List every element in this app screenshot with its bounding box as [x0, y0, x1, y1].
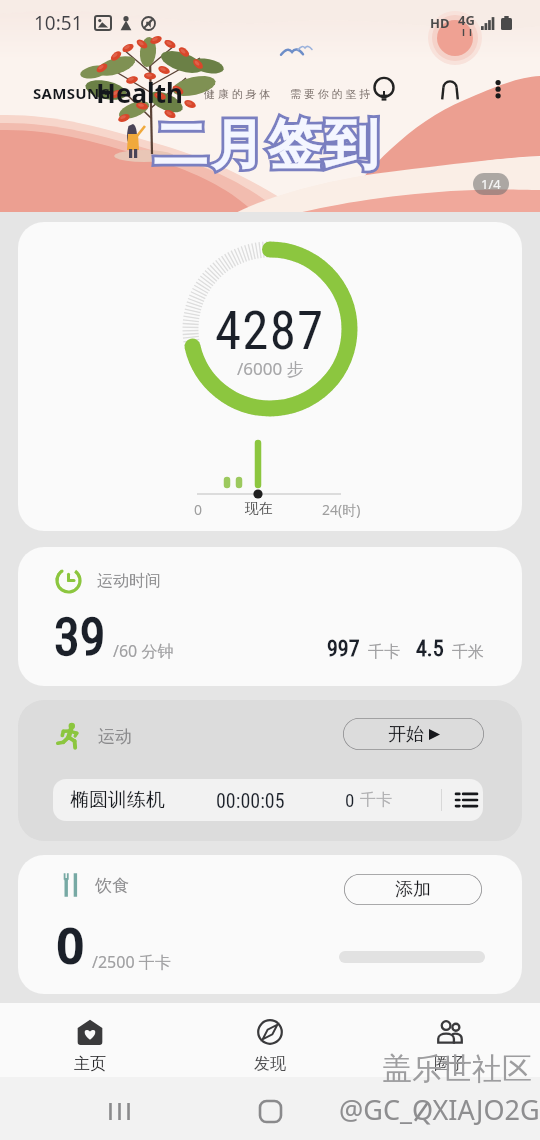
button[interactable]: 饮食 [18, 855, 522, 994]
button[interactable]: 4287 [18, 222, 522, 531]
button[interactable]: 开始 [343, 718, 484, 750]
staticText: 4.5 [416, 636, 444, 662]
staticText: 千卡 [360, 790, 392, 810]
button[interactable]: Back [401, 1091, 441, 1131]
staticText: @GC_QXIAJO2G [339, 1091, 540, 1128]
staticText: 主页 [74, 1054, 106, 1074]
button[interactable]: Home [250, 1091, 290, 1131]
staticText: 1/4 [481, 175, 501, 193]
staticText: Health [96, 75, 183, 110]
staticText: SAMSUNG [33, 83, 111, 103]
staticText: 饮食 [95, 875, 129, 896]
staticText: /60 分钟 [113, 640, 174, 662]
staticText: 39 [54, 607, 106, 668]
staticText: 运动时间 [97, 571, 161, 591]
staticText: 开始 [388, 723, 424, 746]
button[interactable]: Recents [99, 1091, 139, 1131]
staticText: 10:51 [34, 10, 83, 36]
staticText: 健 康 的 身 体 [204, 86, 271, 101]
button[interactable]: Tips [369, 76, 399, 106]
staticText: 997 [327, 636, 360, 662]
button[interactable]: 主页 [0, 1006, 180, 1074]
staticText: 盖乐世社区 [382, 1050, 532, 1088]
staticText: 0 [56, 911, 85, 979]
staticText: 二月签到 [152, 111, 380, 179]
button[interactable]: 圈子 [360, 1006, 540, 1074]
staticText: 0 [194, 500, 203, 519]
staticText: 需 要 你 的 坚 持 [290, 86, 371, 101]
staticText: 现在 [245, 500, 273, 518]
staticText: 千卡 [368, 642, 400, 662]
staticText: 4287 [215, 300, 325, 362]
button[interactable]: 1/4 [481, 175, 501, 193]
button[interactable]: 椭圆训练机 [53, 779, 483, 821]
button[interactable]: 发现 [180, 1006, 360, 1074]
button[interactable]: 运动 [18, 700, 522, 841]
staticText: 24(时) [322, 500, 361, 519]
staticText: 二月签到 [152, 111, 380, 179]
button[interactable]: More options [484, 76, 514, 106]
button[interactable]: Workout details [451, 785, 481, 815]
staticText: 00:00:05 [216, 789, 285, 812]
staticText: 发现 [254, 1054, 286, 1074]
staticText: 千米 [452, 642, 484, 662]
staticText: 0 [345, 789, 355, 811]
staticText: 圈子 [434, 1054, 466, 1074]
button[interactable]: Profile [435, 76, 465, 106]
staticText: 运动 [98, 726, 132, 747]
staticText: 椭圆训练机 [70, 788, 165, 812]
button[interactable]: 添加 [344, 874, 482, 905]
staticText: HD [430, 14, 450, 32]
staticText: /6000 步 [237, 357, 304, 380]
staticText: 添加 [395, 878, 431, 901]
button[interactable]: 运动时间 [18, 547, 522, 686]
staticText: /2500 千卡 [92, 951, 171, 973]
staticText: 4G [458, 11, 475, 29]
